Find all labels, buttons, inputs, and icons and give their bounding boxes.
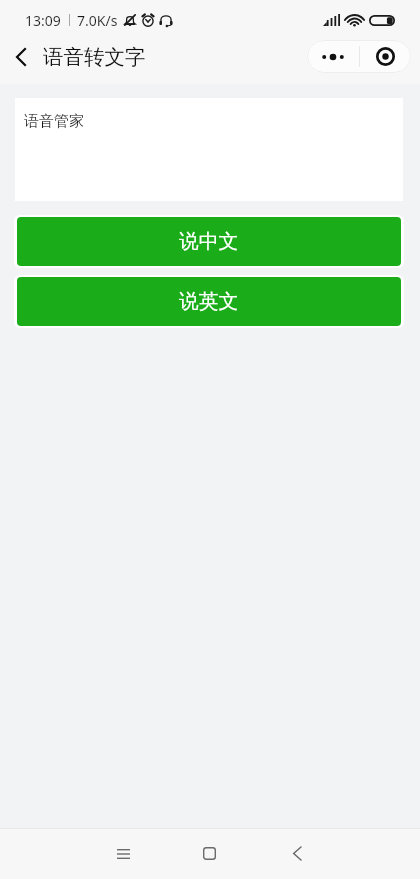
- button[interactable]: 语音管家: [15, 98, 403, 201]
- staticText: 13:09: [25, 11, 61, 30]
- staticText: 说英文: [179, 289, 239, 314]
- button[interactable]: 说英文: [17, 277, 401, 326]
- button[interactable]: Back: [253, 828, 340, 879]
- button[interactable]: Recents: [80, 828, 166, 879]
- staticText: 说中文: [179, 229, 239, 254]
- button[interactable]: 说中文: [17, 217, 401, 266]
- button[interactable]: Close: [360, 40, 411, 73]
- staticText: 语音管家: [24, 112, 84, 131]
- staticText: 7.0K/s: [77, 11, 118, 30]
- button[interactable]: More: [307, 40, 359, 73]
- button[interactable]: Back: [0, 40, 42, 73]
- button[interactable]: Home: [166, 828, 253, 879]
- staticText: 语音转文字: [43, 44, 146, 70]
